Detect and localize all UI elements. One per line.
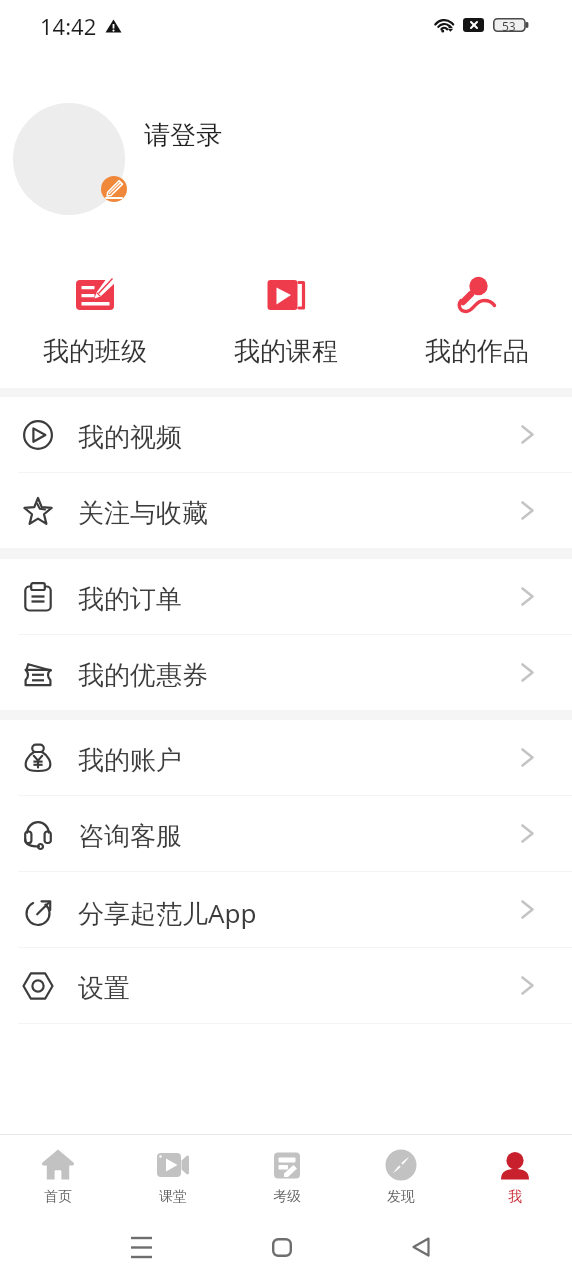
button[interactable]: Recent apps (127, 1236, 155, 1258)
button[interactable]: 请登录 (144, 119, 222, 152)
staticText: 我的班级 (43, 335, 147, 368)
staticText: 我的视频 (78, 421, 182, 454)
button[interactable]: 我的课程 (190, 230, 381, 388)
staticText: 设置 (78, 972, 130, 1005)
button[interactable]: 我的账户 (0, 720, 572, 795)
button[interactable]: 分享起范儿App (0, 872, 572, 947)
staticText: 我的账户 (78, 744, 182, 777)
staticText: 课堂 (159, 1188, 187, 1206)
staticText: 53 (502, 18, 516, 32)
button[interactable]: 设置 (0, 948, 572, 1023)
button[interactable]: 首页 (0, 1135, 115, 1212)
staticText: 我的订单 (78, 583, 182, 616)
staticText: 首页 (44, 1188, 72, 1206)
button[interactable]: Avatar (13, 103, 125, 215)
staticText: 发现 (387, 1188, 415, 1206)
staticText: 我 (508, 1188, 522, 1206)
staticText: 分享起范儿App (78, 895, 257, 931)
button[interactable]: 我的班级 (0, 230, 190, 388)
button[interactable]: 我的视频 (0, 397, 572, 472)
staticText: 我的课程 (234, 335, 338, 368)
staticText: 咨询客服 (78, 820, 182, 853)
button[interactable]: Edit profile (101, 176, 127, 202)
button[interactable]: 关注与收藏 (0, 473, 572, 548)
button[interactable]: 我的订单 (0, 559, 572, 634)
staticText: 我的优惠券 (78, 659, 208, 692)
button[interactable]: 咨询客服 (0, 796, 572, 871)
button[interactable]: 我的作品 (381, 230, 572, 388)
staticText: 14:42 (40, 11, 97, 41)
button[interactable]: 发现 (344, 1135, 458, 1212)
button[interactable]: Home (268, 1236, 296, 1258)
staticText: 关注与收藏 (78, 497, 208, 530)
button[interactable]: 我的优惠券 (0, 635, 572, 710)
button[interactable]: 课堂 (115, 1135, 230, 1212)
staticText: 我的作品 (425, 335, 529, 368)
button[interactable]: Back (407, 1236, 435, 1258)
staticText: 考级 (273, 1188, 301, 1206)
button[interactable]: 我 (458, 1135, 572, 1212)
button[interactable]: 考级 (230, 1135, 344, 1212)
